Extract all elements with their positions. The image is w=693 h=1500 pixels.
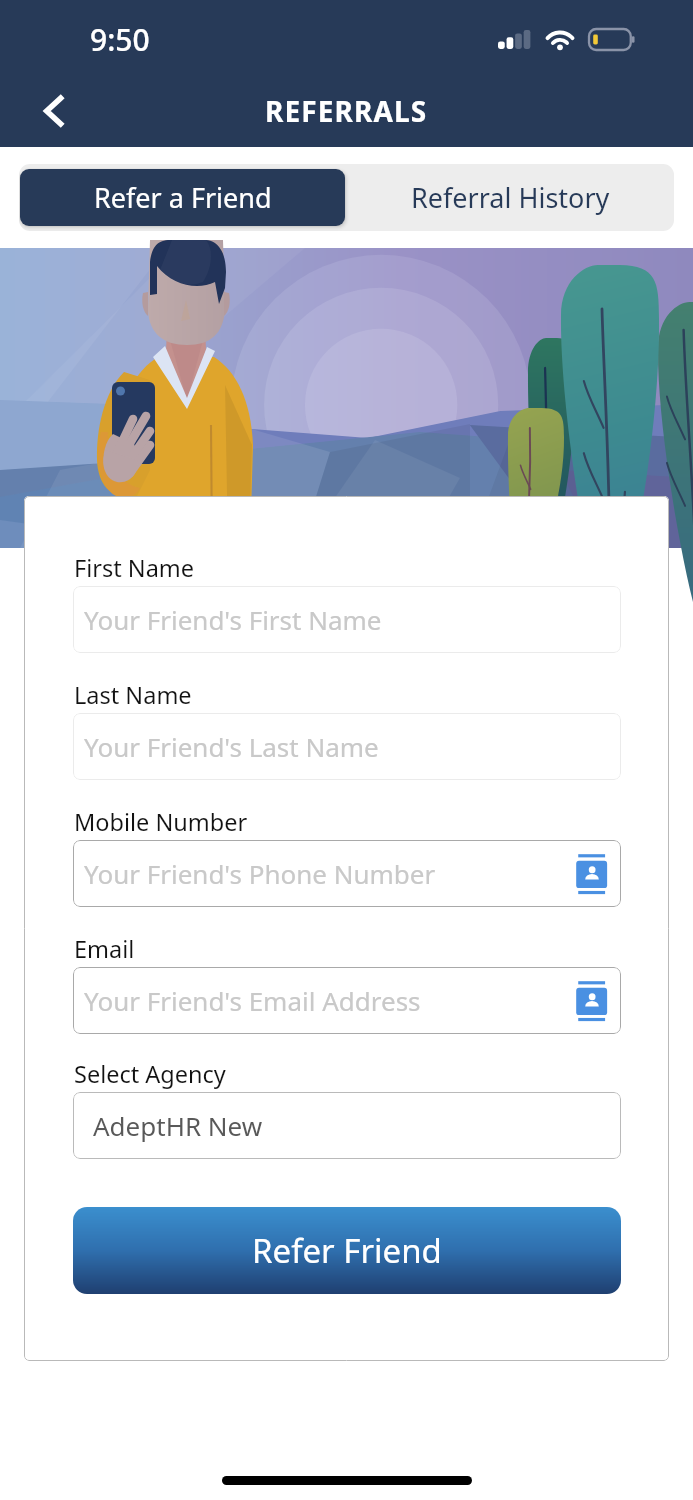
staticText: Mobile Number: [74, 806, 248, 838]
button[interactable]: Your Friend's Phone Number: [73, 840, 621, 907]
button[interactable]: AdeptHR New: [73, 1092, 621, 1159]
staticText: Your Friend's Last Name: [84, 729, 379, 764]
button[interactable]: Choose from contacts: [575, 852, 609, 896]
staticText: Select Agency: [74, 1058, 226, 1090]
button[interactable]: Choose from contacts: [575, 979, 609, 1023]
staticText: 9:50: [90, 19, 150, 60]
staticText: Refer Friend: [252, 1228, 442, 1273]
staticText: Referral History: [411, 179, 610, 216]
staticText: Email: [74, 933, 135, 965]
staticText: REFERRALS: [265, 92, 428, 130]
staticText: Last Name: [74, 679, 192, 711]
staticText: Refer a Friend: [94, 179, 272, 216]
staticText: Your Friend's First Name: [84, 602, 382, 637]
button[interactable]: Referral History: [346, 164, 674, 231]
button[interactable]: Refer Friend: [73, 1207, 621, 1294]
staticText: AdeptHR New: [93, 1108, 263, 1143]
button[interactable]: Your Friend's Last Name: [73, 713, 621, 780]
staticText: Your Friend's Email Address: [84, 983, 421, 1018]
button[interactable]: Your Friend's First Name: [73, 586, 621, 653]
button[interactable]: Refer a Friend: [20, 169, 345, 226]
staticText: First Name: [74, 552, 195, 584]
button[interactable]: Your Friend's Email Address: [73, 967, 621, 1034]
button[interactable]: Back: [22, 82, 82, 142]
staticText: Your Friend's Phone Number: [84, 856, 436, 891]
